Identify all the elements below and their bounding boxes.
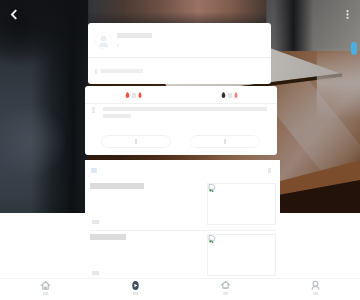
button[interactable]: Video [90, 279, 180, 300]
button[interactable] [85, 231, 280, 281]
button[interactable]: Back [2, 3, 24, 25]
button[interactable] [95, 23, 271, 57]
button[interactable]: Profile [270, 279, 360, 300]
button[interactable] [190, 135, 260, 148]
button[interactable]: Home [0, 279, 90, 300]
button[interactable] [101, 135, 171, 148]
button[interactable]: More options [336, 3, 358, 25]
button[interactable] [85, 180, 280, 230]
button[interactable]: Follow [180, 279, 270, 300]
